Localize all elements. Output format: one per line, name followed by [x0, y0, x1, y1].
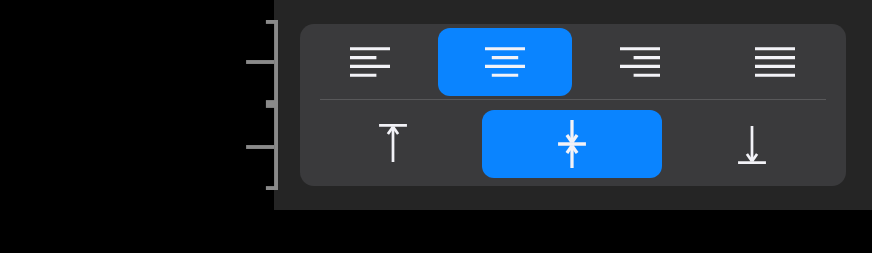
button[interactable]: Align middle: [482, 110, 662, 178]
button[interactable]: Align right: [574, 28, 706, 96]
button[interactable]: Align center: [438, 28, 572, 96]
button[interactable]: Align left: [304, 28, 436, 96]
button[interactable]: Align bottom: [662, 110, 842, 178]
button[interactable]: Align top: [304, 110, 482, 178]
button[interactable]: Justify: [708, 28, 842, 96]
